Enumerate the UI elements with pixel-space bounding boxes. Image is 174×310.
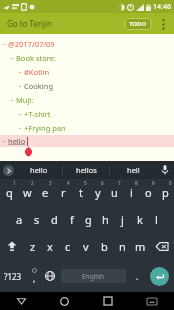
staticText: Go to Tenjin (7, 18, 52, 29)
button[interactable]: d (46, 206, 63, 233)
staticText: - (3, 136, 6, 146)
button[interactable]: Hide keyboard (130, 292, 174, 310)
button[interactable]: m (131, 233, 149, 260)
staticText: w (23, 185, 32, 200)
staticText: - (19, 123, 22, 133)
staticText: 6 (101, 180, 104, 186)
staticText: 2 (31, 180, 34, 186)
staticText: h (102, 212, 109, 227)
button[interactable]: Recent apps (86, 292, 130, 310)
staticText: , (33, 273, 36, 284)
staticText: 7 (118, 180, 121, 186)
button[interactable]: - (0, 38, 174, 50)
button[interactable]: More options (154, 15, 172, 33)
staticText: 4 (67, 180, 70, 186)
button[interactable]: - (0, 122, 174, 134)
button[interactable]: hellos (63, 161, 109, 179)
staticText: y (95, 185, 101, 200)
button[interactable]: e (36, 179, 54, 206)
button[interactable]: - (0, 80, 174, 92)
button[interactable]: English (61, 269, 126, 283)
staticText: hello (8, 136, 26, 146)
button[interactable]: Back (0, 292, 43, 310)
button[interactable]: r (54, 179, 72, 206)
button[interactable]: w (18, 179, 36, 206)
button[interactable]: hello (16, 161, 62, 179)
staticText: hello (30, 165, 48, 175)
button[interactable]: Backspace (149, 233, 174, 260)
staticText: a (16, 212, 23, 227)
button[interactable]: - (0, 52, 174, 64)
staticText: k (137, 212, 143, 227)
button[interactable]: t (72, 179, 89, 206)
staticText: ?123 (4, 271, 22, 282)
button[interactable]: n (113, 233, 131, 260)
button[interactable]: - (0, 108, 174, 120)
button[interactable]: h (97, 206, 114, 233)
staticText: n (119, 239, 126, 254)
button[interactable]: Home (43, 292, 86, 310)
button[interactable]: s (28, 206, 46, 233)
button[interactable]: l (148, 206, 165, 233)
button[interactable]: - (0, 135, 174, 147)
staticText: Cooking (24, 81, 54, 91)
button[interactable]: TODO (125, 18, 151, 30)
staticText: Book store: (16, 53, 56, 63)
button[interactable]: u (106, 179, 123, 206)
staticText: #Kotlin (24, 67, 50, 77)
button[interactable]: ?123 (0, 260, 26, 292)
button[interactable]: Change language (42, 260, 58, 292)
button[interactable]: a (10, 206, 28, 233)
staticText: 8 (135, 180, 138, 186)
staticText: TODO (129, 20, 147, 28)
button[interactable]: c (59, 233, 77, 260)
staticText: f (70, 212, 74, 227)
button[interactable]: j (114, 206, 131, 233)
button[interactable]: Voice input (156, 161, 174, 179)
button[interactable]: Shift (0, 233, 24, 260)
button[interactable]: Expand suggestions (0, 161, 16, 179)
staticText: q (6, 185, 13, 200)
staticText: u (111, 185, 118, 200)
button[interactable]: i (123, 179, 140, 206)
staticText: j (121, 212, 124, 227)
button[interactable]: y (89, 179, 106, 206)
button[interactable]: Enter (145, 260, 174, 292)
staticText: - (11, 53, 14, 63)
staticText: t (79, 185, 83, 200)
staticText: +T-shirt (24, 109, 51, 119)
staticText: Muji: (16, 95, 34, 105)
button[interactable]: v (77, 233, 95, 260)
button[interactable]: o (140, 179, 157, 206)
button[interactable]: Comma and emoji (26, 260, 42, 292)
button[interactable]: - (0, 66, 174, 78)
staticText: . (136, 271, 139, 282)
button[interactable]: b (95, 233, 113, 260)
button[interactable]: z (24, 233, 41, 260)
staticText: 1 (13, 180, 16, 186)
button[interactable]: g (80, 206, 97, 233)
staticText: x (47, 239, 53, 254)
staticText: g (85, 212, 92, 227)
staticText: i (130, 185, 133, 200)
staticText: 3 (49, 180, 52, 186)
staticText: o (145, 185, 152, 200)
button[interactable]: hell (110, 161, 156, 179)
staticText: - (11, 95, 14, 105)
button[interactable]: f (63, 206, 80, 233)
staticText: z (30, 239, 36, 254)
button[interactable]: p (157, 179, 174, 206)
button[interactable]: x (41, 233, 59, 260)
button[interactable]: . (129, 260, 145, 292)
staticText: - (19, 81, 22, 91)
button[interactable]: k (131, 206, 148, 233)
staticText: d (51, 212, 58, 227)
staticText: v (83, 239, 89, 254)
staticText: p (162, 185, 169, 200)
button[interactable]: - (0, 94, 174, 106)
staticText: b (101, 239, 108, 254)
staticText: hell (127, 165, 140, 175)
button[interactable]: q (0, 179, 18, 206)
staticText: hellos (76, 165, 97, 175)
staticText: @2017/07/09 (8, 39, 55, 49)
